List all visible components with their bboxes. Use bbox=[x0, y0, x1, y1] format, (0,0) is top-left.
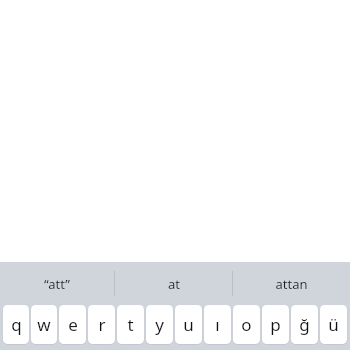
button[interactable]: attan bbox=[233, 262, 350, 305]
staticText: u bbox=[183, 313, 194, 336]
button[interactable]: at bbox=[115, 262, 232, 305]
button[interactable]: p bbox=[262, 305, 289, 344]
button[interactable]: w bbox=[31, 305, 57, 344]
staticText: at bbox=[168, 275, 180, 293]
staticText: ü bbox=[328, 313, 339, 336]
button[interactable]: ğ bbox=[291, 305, 318, 344]
staticText: ı bbox=[215, 313, 220, 336]
staticText: “att” bbox=[44, 275, 70, 293]
staticText: e bbox=[68, 313, 78, 336]
staticText: r bbox=[98, 313, 106, 336]
staticText: o bbox=[241, 313, 252, 336]
button[interactable]: ü bbox=[320, 305, 347, 344]
button[interactable]: u bbox=[175, 305, 202, 344]
staticText: ğ bbox=[299, 313, 310, 336]
staticText: attan bbox=[275, 275, 308, 293]
button[interactable]: e bbox=[59, 305, 86, 344]
staticText: w bbox=[37, 313, 51, 336]
staticText: p bbox=[270, 313, 281, 336]
button[interactable]: ı bbox=[204, 305, 231, 344]
staticText: y bbox=[155, 313, 164, 336]
button[interactable]: “att” bbox=[0, 262, 114, 305]
staticText: q bbox=[11, 313, 22, 336]
button[interactable]: q bbox=[3, 305, 29, 344]
button[interactable]: r bbox=[88, 305, 115, 344]
button[interactable]: o bbox=[233, 305, 260, 344]
staticText: t bbox=[127, 313, 134, 336]
button[interactable]: y bbox=[146, 305, 173, 344]
button[interactable]: t bbox=[117, 305, 144, 344]
